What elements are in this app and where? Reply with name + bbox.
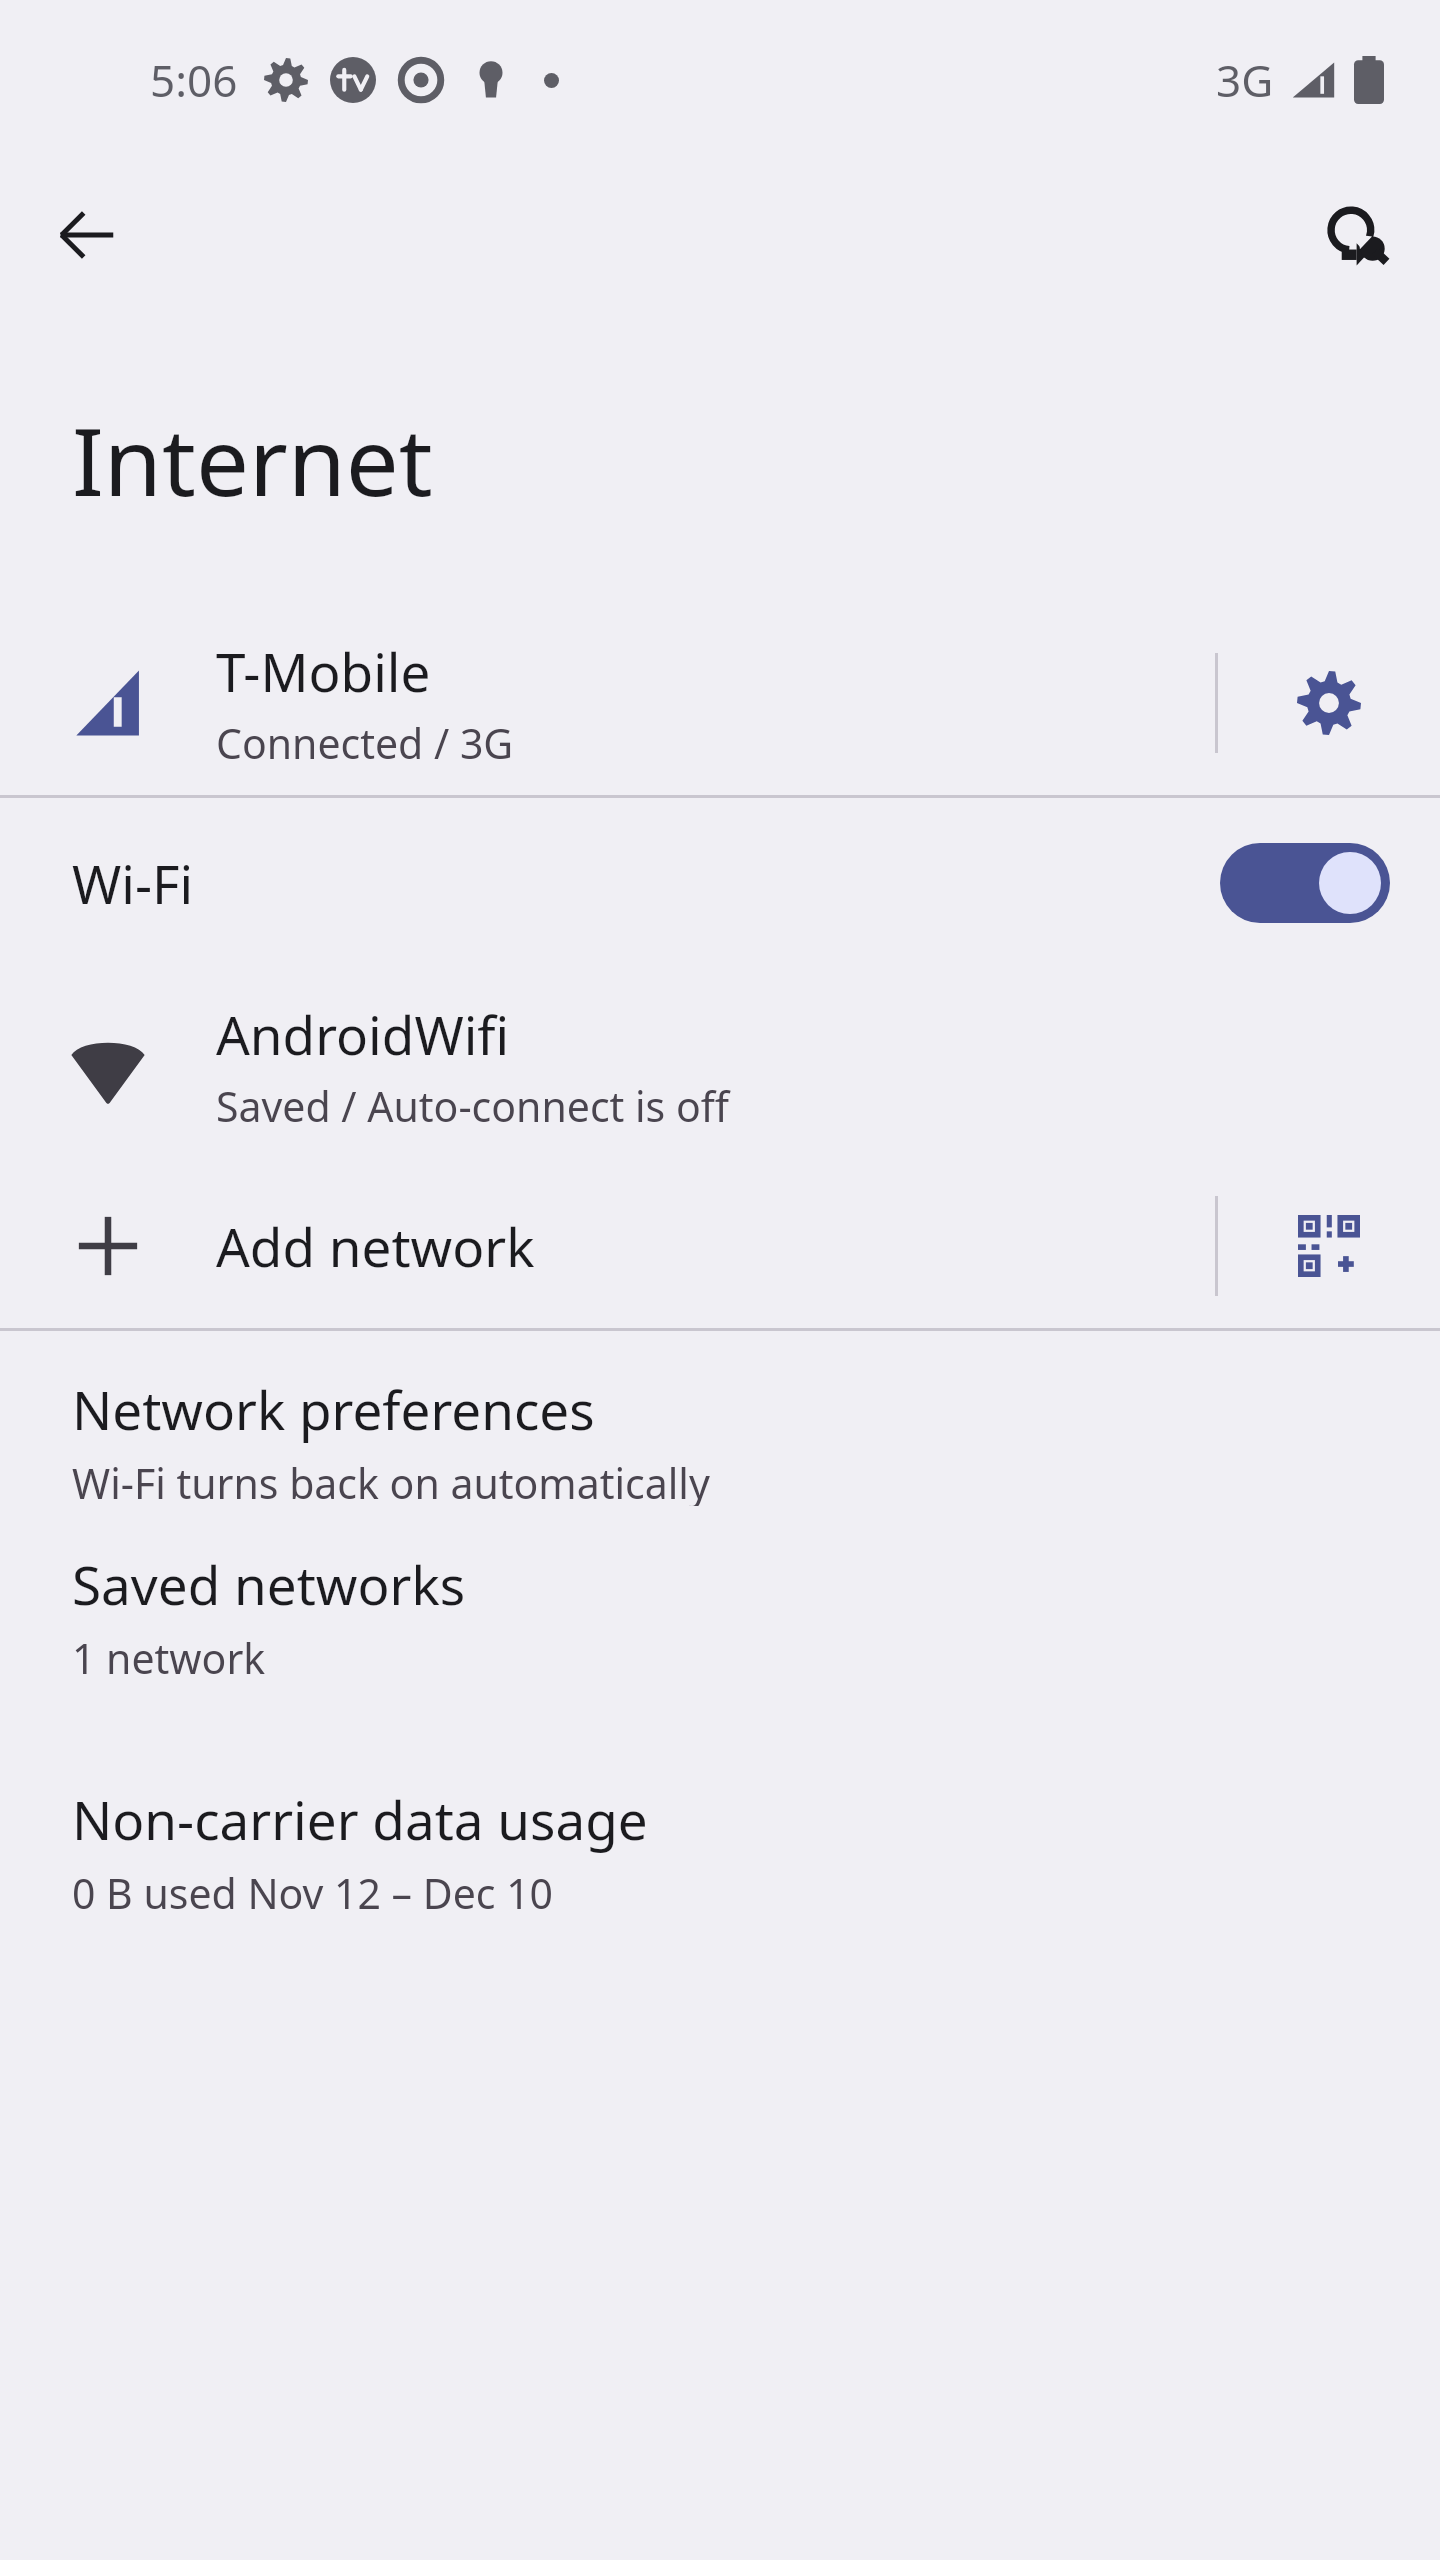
staticText: 5:06 — [150, 50, 238, 110]
button[interactable]: Wi-Fi — [0, 798, 1440, 968]
staticText: Saved networks — [72, 1548, 466, 1620]
button[interactable]: Non-carrier data usage — [0, 1741, 1440, 1976]
button[interactable]: Wi-Fi toggle — [1220, 843, 1390, 923]
staticText: T-Mobile — [216, 635, 431, 707]
staticText: Network preferences — [72, 1373, 595, 1445]
button[interactable]: Add network — [0, 1163, 1440, 1328]
button[interactable]: T-Mobile — [0, 610, 1440, 795]
button[interactable]: Carrier settings — [1218, 610, 1440, 795]
button[interactable]: Back — [36, 185, 136, 285]
staticText: Wi-Fi — [72, 847, 194, 919]
staticText: Non-carrier data usage — [72, 1783, 648, 1855]
button[interactable]: Network preferences — [0, 1331, 1440, 1506]
staticText: 0 B used Nov 12 – Dec 10 — [72, 1865, 554, 1921]
staticText: Internet — [72, 396, 433, 524]
staticText: Connected / 3G — [216, 715, 514, 771]
staticText: AndroidWifi — [216, 998, 510, 1070]
staticText: 3G — [1216, 50, 1274, 110]
staticText: Saved / Auto-connect is off — [216, 1078, 729, 1134]
button[interactable]: Scan QR code — [1218, 1163, 1440, 1328]
button[interactable]: AndroidWifi — [0, 968, 1440, 1163]
button[interactable]: Saved networks — [0, 1506, 1440, 1741]
staticText: Add network — [216, 1210, 535, 1282]
button[interactable]: Reset options — [1304, 185, 1404, 285]
staticText: Wi-Fi turns back on automatically — [72, 1455, 710, 1506]
staticText: 1 network — [72, 1630, 266, 1686]
